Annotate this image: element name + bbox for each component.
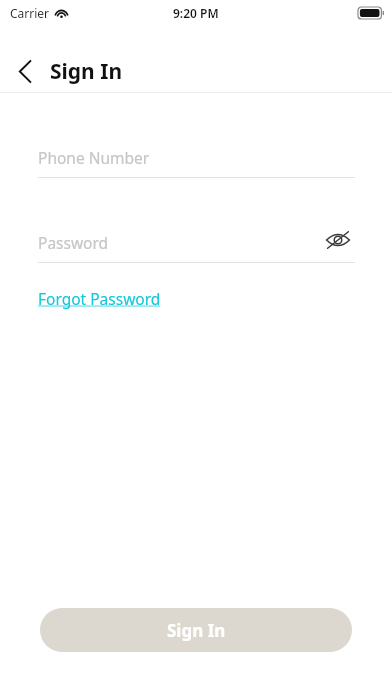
button[interactable]: Show password — [321, 223, 355, 257]
staticText: Forgot Password — [38, 288, 161, 309]
staticText: Sign In — [50, 57, 123, 86]
button[interactable]: Password — [38, 222, 355, 263]
staticText: Sign In — [167, 619, 226, 642]
button[interactable]: Forgot Password — [38, 286, 161, 311]
button[interactable]: Phone Number — [38, 136, 355, 178]
button[interactable]: Back — [8, 54, 42, 88]
staticText: Password — [38, 232, 109, 253]
staticText: Phone Number — [38, 147, 150, 168]
staticText: 9:20 PM — [173, 5, 219, 21]
staticText: Carrier — [10, 5, 50, 21]
button[interactable]: Sign In — [40, 608, 352, 652]
